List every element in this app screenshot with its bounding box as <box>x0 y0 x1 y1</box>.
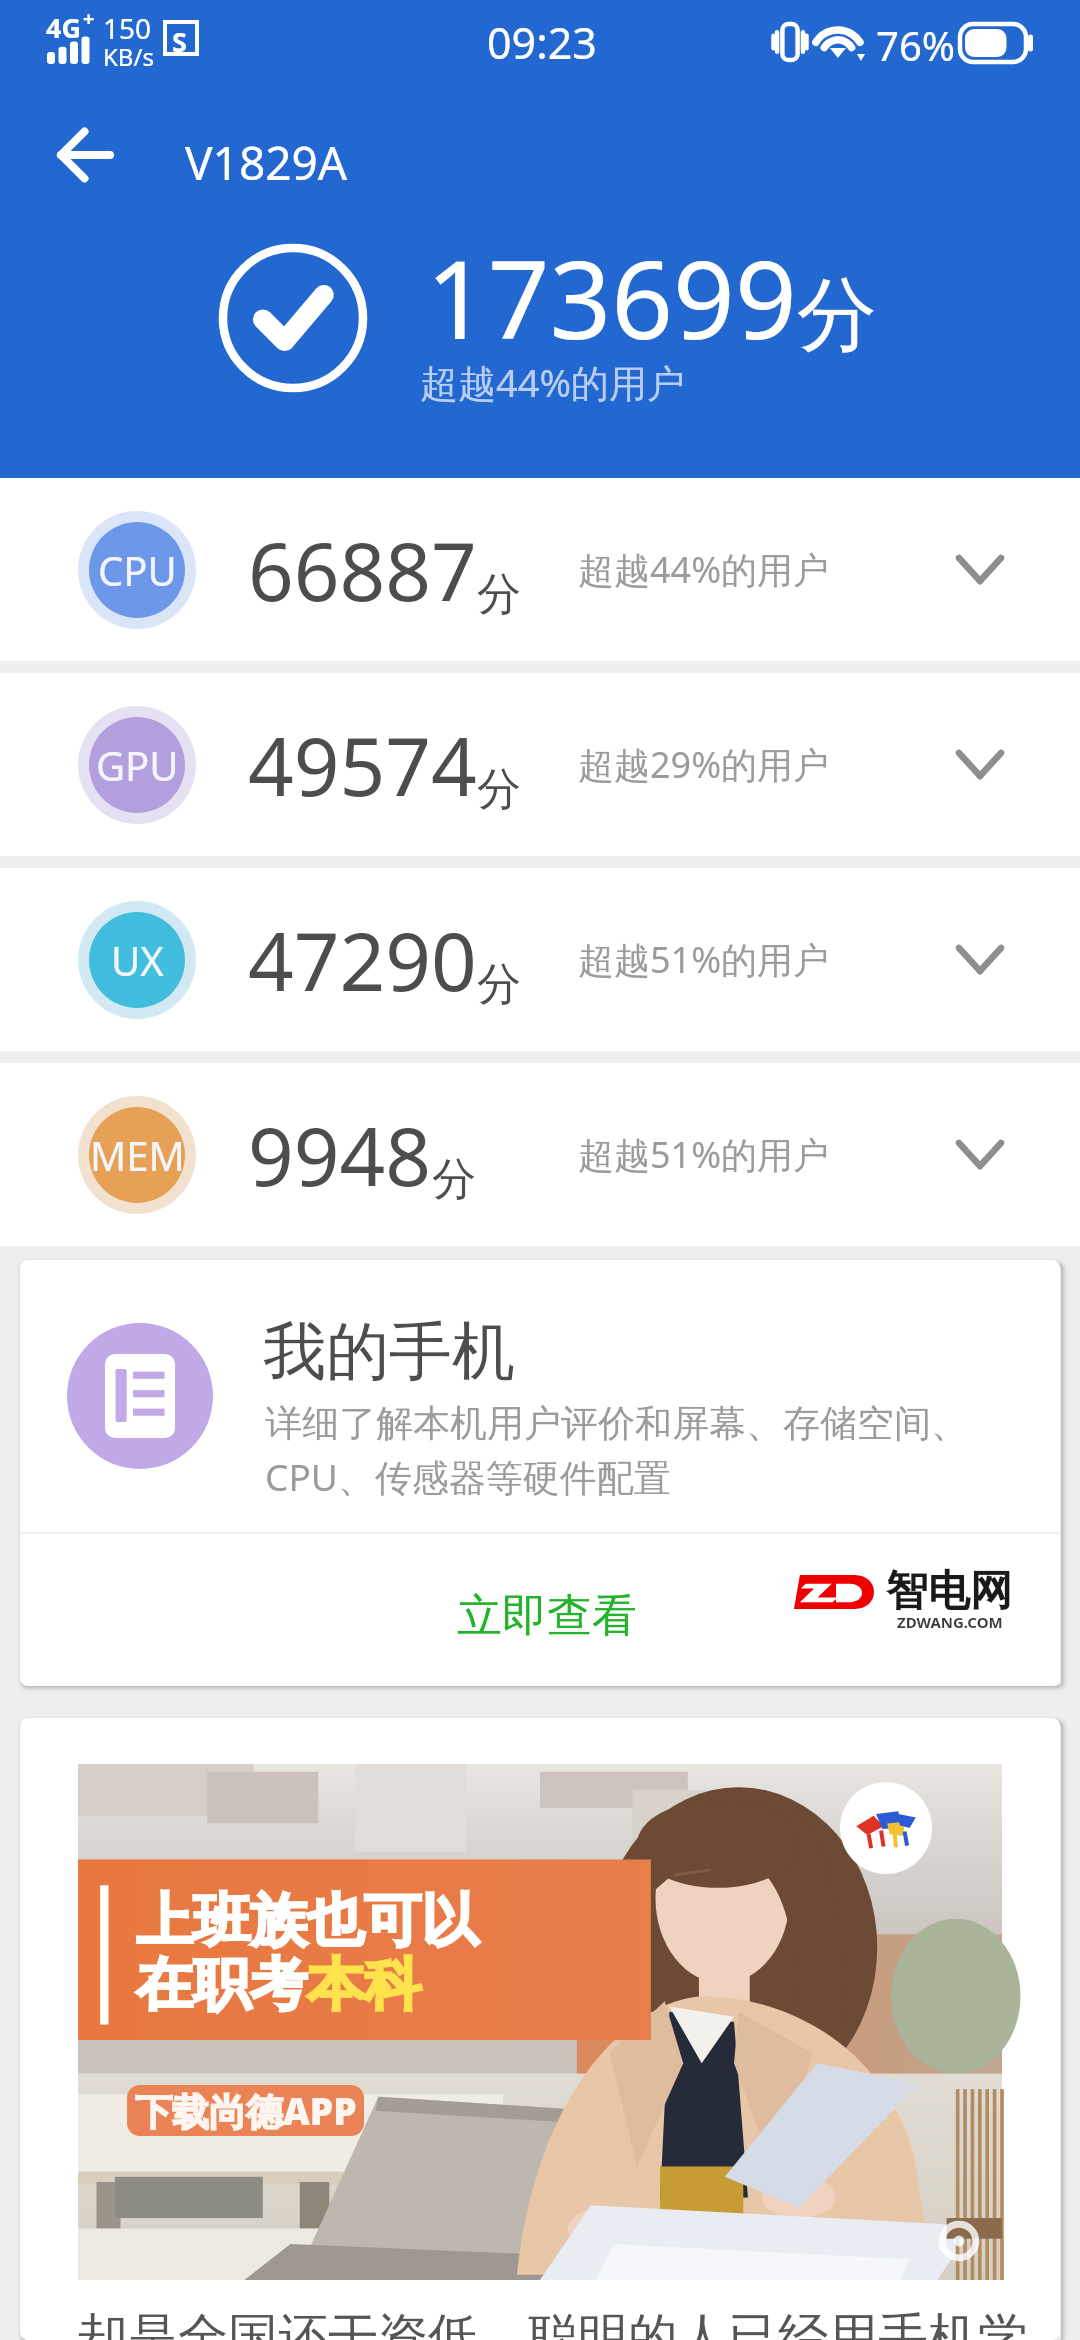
staticText: 分 <box>432 1152 476 1207</box>
staticText: 09:23 <box>487 13 597 72</box>
button[interactable]: Expand CPU details <box>920 478 1080 661</box>
staticText: 分 <box>477 957 521 1012</box>
staticText: MEM <box>90 1128 185 1182</box>
staticText: 本科 <box>307 1949 421 2021</box>
staticText: V1829A <box>185 131 348 194</box>
button[interactable]: GPU <box>0 673 1080 856</box>
staticText: 47290 <box>248 905 477 1014</box>
staticText: 9948 <box>248 1100 432 1209</box>
staticText: KB/s <box>103 40 154 73</box>
staticText: 分 <box>477 567 521 622</box>
staticText: 超越29%的用户 <box>578 740 830 789</box>
staticText: 上班族也可以 <box>136 1885 478 1957</box>
button[interactable]: Back <box>36 107 132 203</box>
button[interactable]: Expand GPU details <box>920 673 1080 856</box>
button[interactable]: 我的手机 <box>20 1260 1060 1532</box>
staticText: 76% <box>876 18 955 72</box>
staticText: ZDWANG.COM <box>897 1612 1003 1632</box>
staticText: 49574 <box>248 710 477 819</box>
staticText: GPU <box>96 738 179 792</box>
button[interactable]: 上班族也可以 <box>78 1764 1002 2280</box>
staticText: 超越51%的用户 <box>578 1130 830 1179</box>
button[interactable]: 立即查看 <box>437 1574 657 1659</box>
staticText: 超越44%的用户 <box>420 356 686 408</box>
staticText: 150 <box>103 9 152 47</box>
button[interactable]: MEM <box>0 1063 1080 1246</box>
staticText: 立即查看 <box>457 1588 637 1645</box>
staticText: 超越51%的用户 <box>578 935 830 984</box>
button[interactable]: Expand UX details <box>920 868 1080 1051</box>
button[interactable]: CPU <box>0 478 1080 661</box>
button[interactable]: Expand MEM details <box>920 1063 1080 1246</box>
staticText: 4G <box>46 9 81 46</box>
staticText: + <box>83 5 95 32</box>
staticText: UX <box>111 933 164 987</box>
staticText: 66887 <box>248 515 477 624</box>
button[interactable]: UX <box>0 868 1080 1051</box>
staticText: 分 <box>797 265 877 366</box>
staticText: S <box>172 23 187 60</box>
staticText: 我的手机 <box>263 1312 515 1391</box>
staticText: 173699 <box>426 224 797 371</box>
staticText: 超越44%的用户 <box>578 545 830 594</box>
staticText: CPU <box>98 543 177 597</box>
staticText: 下载尚德APP <box>135 2085 357 2136</box>
staticText: 详细了解本机用户评价和屏幕、存储空间、 CPU、传感器等硬件配置 <box>265 1400 968 1502</box>
staticText: 智电网 <box>886 1565 1012 1618</box>
staticText: 在职考 <box>136 1949 307 2021</box>
staticText: 分 <box>477 762 521 817</box>
button[interactable]: 下载尚德APP <box>127 2085 364 2136</box>
staticText: 却是全国还干资低，聪明的人已经用手机学 <box>78 2306 1028 2340</box>
